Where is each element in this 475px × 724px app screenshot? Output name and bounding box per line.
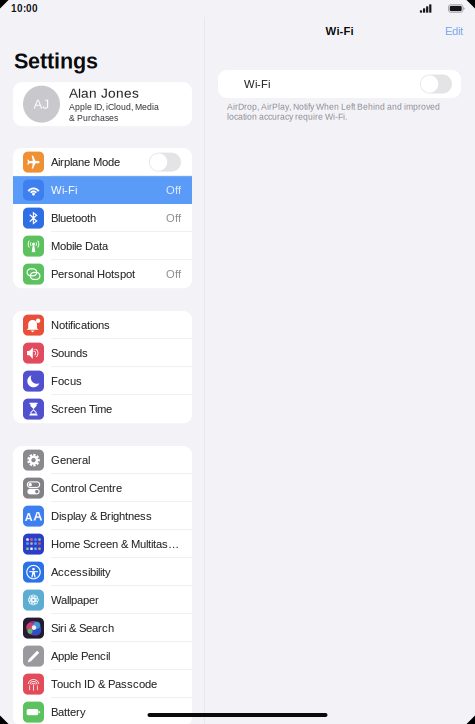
staticText: Airplane Mode <box>51 156 120 168</box>
button[interactable]: Airplane Mode <box>13 148 192 176</box>
staticText: Home Screen & Multitas… <box>51 538 179 550</box>
staticText: Personal Hotspot <box>51 268 135 280</box>
button[interactable]: Battery <box>13 698 192 724</box>
staticText: Wi-Fi <box>325 25 353 37</box>
button[interactable]: Mobile Data <box>13 232 192 260</box>
staticText: Screen Time <box>51 403 112 415</box>
staticText: Touch ID & Passcode <box>51 678 157 690</box>
staticText: Mobile Data <box>51 240 108 252</box>
staticText: Off <box>166 268 181 280</box>
button[interactable]: A <box>13 502 192 530</box>
staticText: Off <box>166 212 181 224</box>
button[interactable]: AJ <box>13 82 192 126</box>
button[interactable]: Control Centre <box>13 474 192 502</box>
button[interactable]: General <box>13 446 192 474</box>
staticText: A <box>33 509 42 523</box>
button[interactable]: Accessibility <box>13 558 192 586</box>
button[interactable]: Notifications <box>13 311 192 339</box>
button[interactable]: Screen Time <box>13 395 192 423</box>
staticText: Sounds <box>51 347 88 359</box>
button[interactable]: Touch ID & Passcode <box>13 670 192 698</box>
staticText: & Purchases <box>69 113 118 123</box>
staticText: Edit <box>445 25 463 37</box>
staticText: Focus <box>51 375 82 387</box>
staticText: Off <box>166 184 181 196</box>
staticText: AirDrop, AirPlay, Notify When Left Behin… <box>227 102 440 111</box>
button[interactable]: Wallpaper <box>13 586 192 614</box>
button[interactable]: Home Screen & Multitas… <box>13 530 192 558</box>
staticText: Display & Brightness <box>51 510 152 522</box>
staticText: Battery <box>51 706 86 718</box>
staticText: Siri & Search <box>51 622 114 634</box>
button[interactable]: Personal Hotspot <box>13 260 192 288</box>
button[interactable]: Bluetooth <box>13 204 192 232</box>
staticText: Wallpaper <box>51 594 99 606</box>
staticText: AJ <box>33 97 49 112</box>
staticText: Bluetooth <box>51 212 96 224</box>
staticText: Wi-Fi <box>244 78 270 90</box>
button[interactable]: Sounds <box>13 339 192 367</box>
staticText: location accuracy require Wi-Fi. <box>227 112 347 121</box>
button[interactable]: Focus <box>13 367 192 395</box>
staticText: Apple ID, iCloud, Media <box>69 102 159 112</box>
staticText: Notifications <box>51 319 110 331</box>
staticText: Apple Pencil <box>51 650 110 662</box>
staticText: Control Centre <box>51 482 122 494</box>
staticText: A <box>25 511 33 523</box>
button[interactable]: Apple Pencil <box>13 642 192 670</box>
button[interactable]: Siri & Search <box>13 614 192 642</box>
button[interactable]: Edit <box>445 21 475 41</box>
staticText: Accessibility <box>51 566 111 578</box>
button[interactable]: Wi-Fi <box>13 176 192 204</box>
staticText: General <box>51 454 90 466</box>
staticText: Wi-Fi <box>51 184 77 196</box>
staticText: Settings <box>14 49 98 73</box>
staticText: Alan Jones <box>69 85 139 101</box>
staticText: 10:00 <box>11 3 38 14</box>
